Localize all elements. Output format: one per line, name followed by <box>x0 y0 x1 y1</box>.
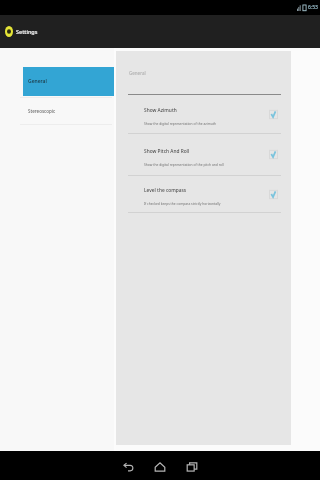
staticText: Show the digital representation of the p… <box>144 162 224 166</box>
button[interactable]: Recent apps <box>181 456 203 478</box>
button[interactable]: Show Pitch And Roll <box>116 134 291 176</box>
button[interactable]: Level the compass <box>116 176 291 213</box>
staticText: Stereoscopic <box>28 108 56 114</box>
button[interactable]: Home <box>149 456 171 478</box>
staticText: General <box>129 70 146 76</box>
button[interactable]: Stereoscopic <box>23 98 114 124</box>
staticText: General <box>28 78 47 85</box>
button[interactable]: Show Azimuth <box>116 95 291 134</box>
staticText: Settings <box>16 28 38 35</box>
staticText: Show Pitch And Roll <box>144 148 190 155</box>
staticText: Show the digital representation of the a… <box>144 121 216 125</box>
staticText: If checked keeps the compass strictly ho… <box>144 201 221 205</box>
staticText: Level the compass <box>144 187 187 194</box>
button[interactable]: Back <box>117 456 139 478</box>
staticText: Show Azimuth <box>144 107 177 114</box>
staticText: 6:53 <box>308 4 318 11</box>
button[interactable]: General <box>23 67 114 96</box>
